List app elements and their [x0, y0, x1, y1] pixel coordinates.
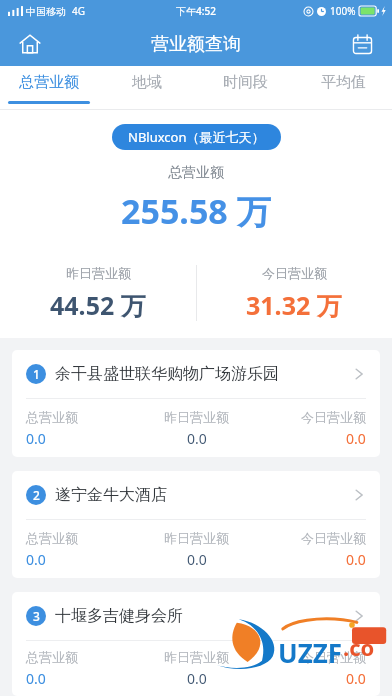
staticText: 4G — [72, 4, 85, 18]
staticText: 营业额查询 — [151, 33, 241, 56]
staticText: 0.0 — [187, 669, 207, 688]
button[interactable]: 时间段 — [196, 66, 294, 110]
staticText: 总营业额 — [26, 649, 78, 665]
staticText: 2 — [33, 487, 40, 503]
staticText: 255.58 万 — [121, 188, 271, 234]
button[interactable]: NBluxcon（最近七天） — [112, 124, 281, 150]
staticText: NBluxcon（最近七天） — [128, 128, 265, 146]
button[interactable]: 3 — [12, 592, 380, 696]
button[interactable]: Home — [10, 24, 50, 64]
staticText: 0.0 — [26, 550, 46, 569]
staticText: 0.0 — [346, 669, 366, 688]
staticText: 总营业额 — [19, 73, 79, 92]
button[interactable]: Calendar — [342, 24, 382, 64]
staticText: 0.0 — [26, 669, 46, 688]
staticText: 总营业额 — [168, 164, 224, 182]
staticText: 3 — [33, 608, 40, 624]
staticText: 0.0 — [26, 429, 46, 448]
staticText: 平均值 — [321, 73, 366, 92]
staticText: 昨日营业额 — [66, 265, 131, 281]
staticText: 今日营业额 — [301, 409, 366, 425]
staticText: 0.0 — [187, 429, 207, 448]
staticText: 1 — [33, 366, 40, 382]
staticText: 总营业额 — [26, 409, 78, 425]
button[interactable]: 平均值 — [294, 66, 392, 110]
staticText: 十堰多吉健身会所 — [55, 606, 352, 626]
staticText: 遂宁金牛大酒店 — [55, 485, 352, 505]
staticText: 今日营业额 — [262, 265, 327, 281]
staticText: 下午4:52 — [176, 4, 216, 18]
staticText: 总营业额 — [26, 530, 78, 546]
staticText: 今日营业额 — [301, 649, 366, 665]
staticText: 中国移动 — [26, 5, 66, 18]
staticText: 44.52 万 — [50, 288, 146, 322]
staticText: 100% — [330, 4, 356, 18]
staticText: .com — [343, 632, 388, 672]
staticText: 0.0 — [346, 550, 366, 569]
staticText: 0.0 — [187, 550, 207, 569]
staticText: UZZF — [278, 635, 343, 670]
staticText: 昨日营业额 — [164, 409, 229, 425]
staticText: 时间段 — [223, 73, 268, 92]
staticText: 余干县盛世联华购物广场游乐园 — [55, 364, 352, 384]
staticText: 昨日营业额 — [164, 649, 229, 665]
staticText: 地域 — [132, 73, 162, 92]
button[interactable]: 总营业额 — [0, 66, 98, 110]
button[interactable]: 地域 — [98, 66, 196, 110]
staticText: 31.32 万 — [246, 288, 342, 322]
button[interactable]: 1 — [12, 350, 380, 457]
button[interactable]: 2 — [12, 471, 380, 578]
staticText: 0.0 — [346, 429, 366, 448]
staticText: 今日营业额 — [301, 530, 366, 546]
staticText: 昨日营业额 — [164, 530, 229, 546]
